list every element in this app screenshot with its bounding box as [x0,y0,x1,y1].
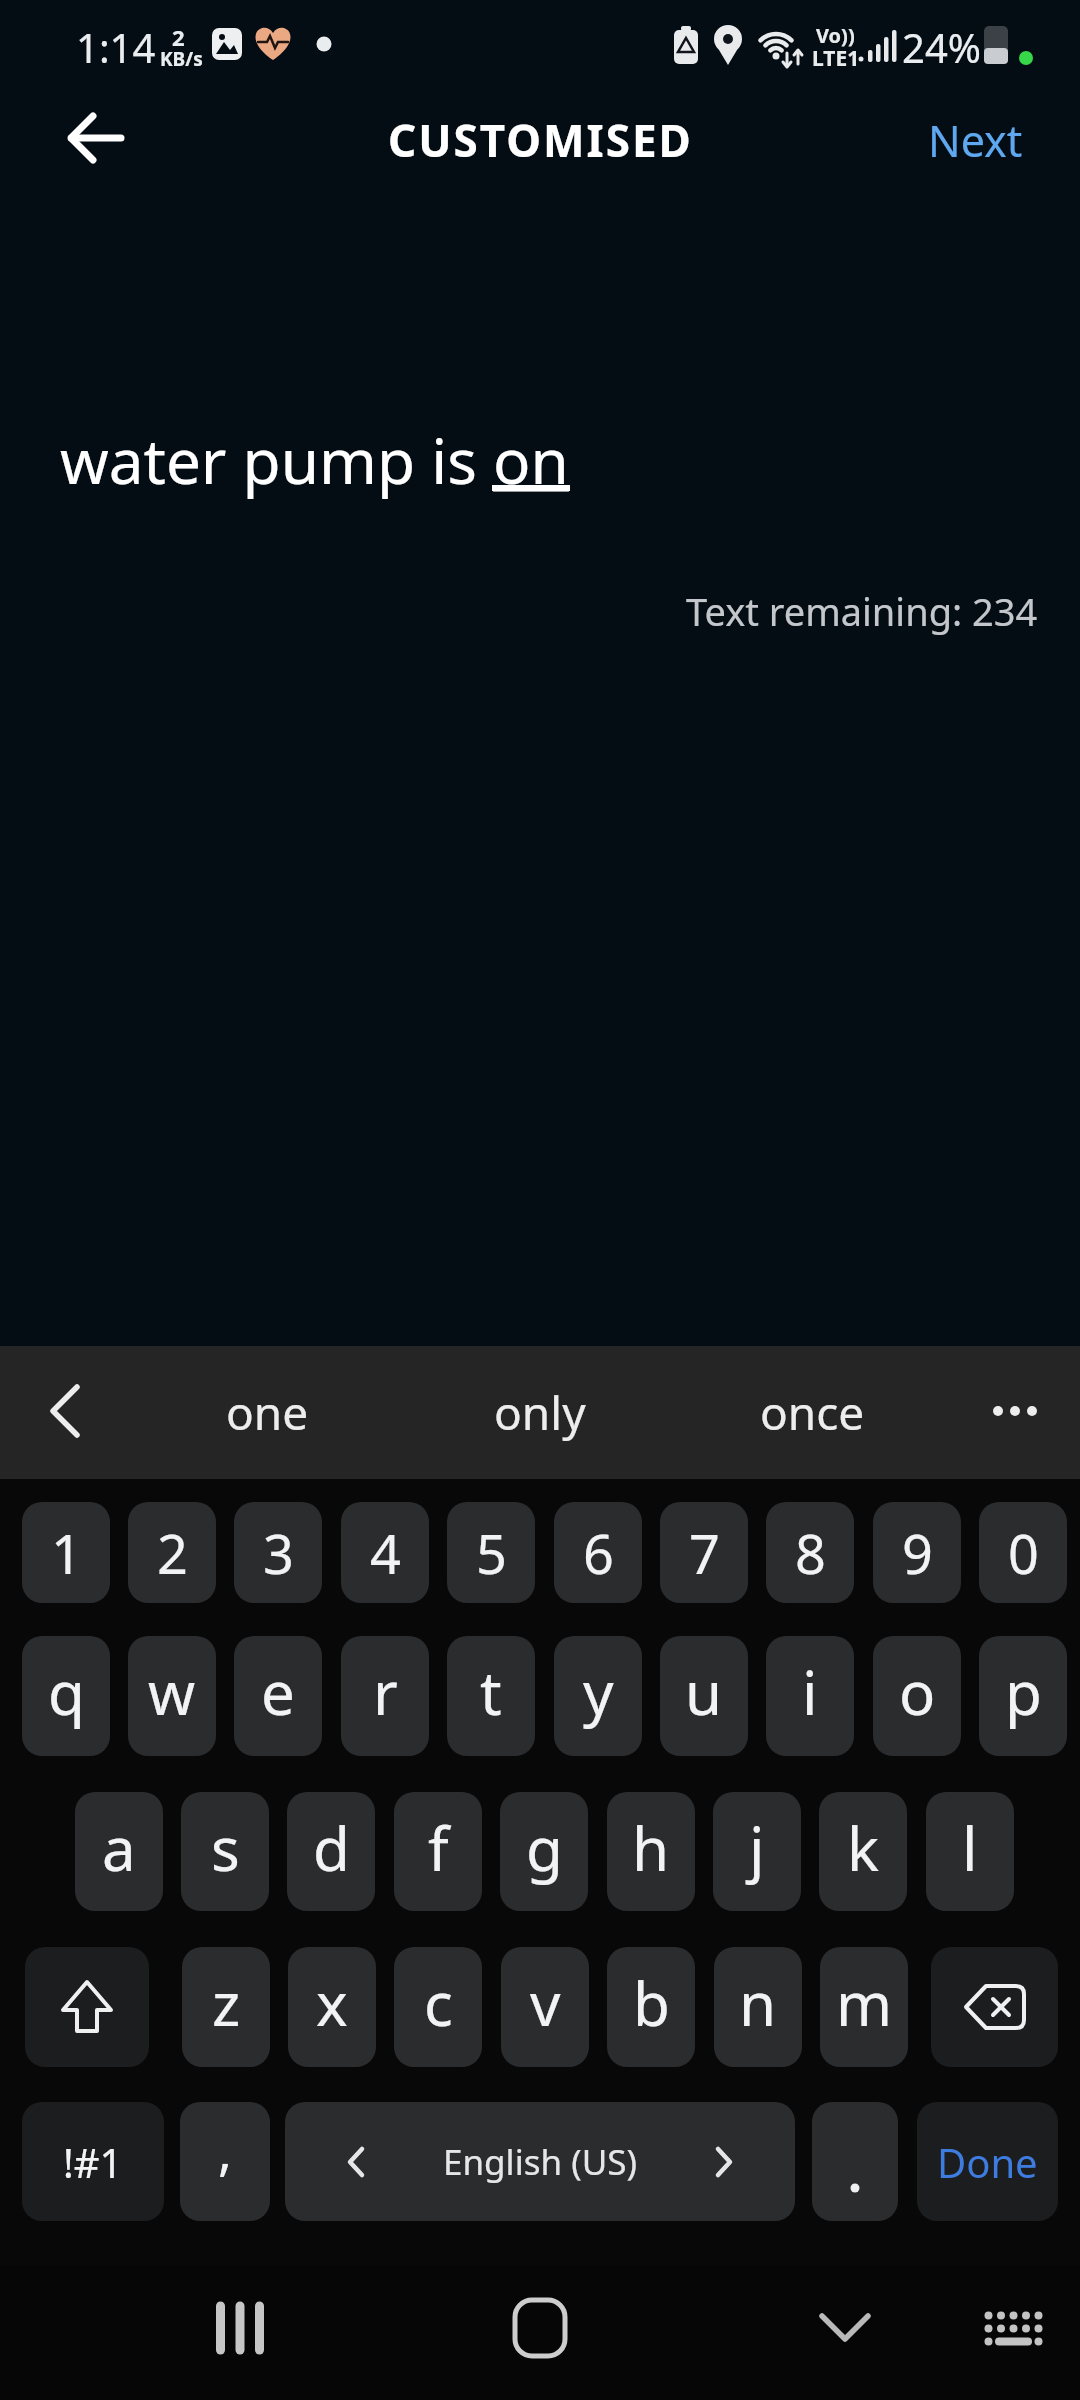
staticText: i [802,1651,818,1733]
button[interactable]: r [341,1636,429,1756]
button[interactable]: b [607,1947,695,2067]
button[interactable] [185,2280,295,2375]
button[interactable]: once [722,1346,902,1479]
button[interactable] [790,2280,900,2375]
button[interactable]: f [394,1792,482,1911]
staticText: 4 [370,1516,401,1590]
button[interactable]: z [182,1947,270,2067]
staticText: l [962,1807,978,1889]
button[interactable]: i [766,1636,854,1756]
staticText: 24% [902,20,981,74]
staticText: q [48,1651,85,1733]
button[interactable]: t [447,1636,535,1756]
button[interactable]: e [234,1636,322,1756]
button[interactable]: 2 [128,1502,216,1603]
button[interactable]: o [873,1636,961,1756]
staticText: n [739,1962,777,2044]
staticText: 3 [263,1516,294,1590]
button[interactable]: p [979,1636,1067,1756]
button[interactable]: 9 [873,1502,961,1603]
staticText: k [847,1807,880,1889]
staticText: t [480,1651,502,1733]
button[interactable] [960,2280,1065,2375]
staticText: b [633,1962,670,2044]
staticText: c [424,1962,453,2044]
staticText: , [218,2114,232,2185]
button[interactable]: English (US) [285,2102,795,2221]
staticText: LTE1 [812,44,860,73]
button[interactable]: j [713,1792,801,1911]
staticText: English (US) [443,2138,637,2186]
button[interactable]: d [287,1792,375,1911]
staticText: once [760,1381,865,1444]
button[interactable]: v [501,1947,589,2067]
button[interactable]: h [607,1792,695,1911]
button[interactable]: 5 [447,1502,535,1603]
button[interactable]: k [819,1792,907,1911]
staticText: 7 [689,1516,720,1590]
staticText: r [373,1651,398,1733]
button[interactable]: c [394,1947,482,2067]
staticText: z [212,1962,241,2044]
button[interactable]: g [500,1792,588,1911]
button[interactable] [30,1376,100,1446]
button[interactable]: w [128,1636,216,1756]
staticText: a [102,1807,136,1889]
staticText: only [494,1381,586,1444]
button[interactable] [50,94,142,186]
button[interactable]: q [22,1636,110,1756]
staticText: 1:14 [76,20,156,74]
button[interactable] [485,2280,595,2375]
button[interactable] [931,1947,1058,2067]
button[interactable]: 1 [22,1502,110,1603]
button[interactable]: n [714,1947,802,2067]
staticText: 6 [583,1516,614,1590]
staticText: m [836,1962,893,2044]
button[interactable]: l [926,1792,1014,1911]
button[interactable]: Done [917,2102,1058,2221]
staticText: w [148,1651,196,1733]
button[interactable]: x [288,1947,376,2067]
button[interactable]: m [820,1947,908,2067]
staticText: 8 [795,1516,826,1590]
staticText: 0 [1008,1516,1039,1590]
button[interactable]: one [177,1346,357,1479]
staticText: Text remaining: 234 [686,585,1038,637]
button[interactable]: Next [910,90,1040,190]
button[interactable]: 7 [660,1502,748,1603]
button[interactable]: 8 [766,1502,854,1603]
button[interactable]: 0 [979,1502,1067,1603]
staticText: 9 [902,1516,933,1590]
staticText: 5 [476,1516,507,1590]
button[interactable] [25,1947,149,2067]
button[interactable]: 3 [234,1502,322,1603]
button[interactable]: a [75,1792,163,1911]
button[interactable] [965,1376,1065,1446]
staticText: v [530,1962,561,2044]
button[interactable]: !#1 [22,2102,164,2221]
staticText: e [261,1651,295,1733]
staticText: s [211,1807,240,1889]
staticText: 2 [157,1516,188,1590]
staticText: one [226,1381,309,1444]
staticText: Vo)) [816,22,855,49]
button[interactable]: y [554,1636,642,1756]
button[interactable] [812,2102,898,2221]
button[interactable]: u [660,1636,748,1756]
button[interactable]: s [181,1792,269,1911]
staticText: j [749,1807,765,1889]
staticText: CUSTOMISED [388,110,693,170]
button[interactable]: 6 [554,1502,642,1603]
staticText: p [1005,1651,1042,1733]
button[interactable]: , [180,2102,270,2221]
staticText: 2 [172,22,185,52]
staticText: o [899,1651,936,1733]
staticText: water pump is on [60,418,569,502]
staticText: x [316,1962,348,2044]
staticText: d [313,1807,350,1889]
button[interactable]: only [450,1346,630,1479]
button[interactable]: 4 [341,1502,429,1603]
staticText: 1 [51,1516,82,1590]
staticText: !#1 [63,2135,123,2189]
staticText: Next [928,111,1023,170]
